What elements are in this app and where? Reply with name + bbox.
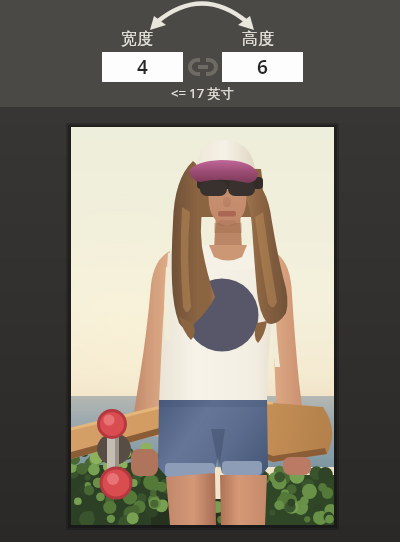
button[interactable]	[71, 127, 334, 525]
staticText: 宽度	[121, 29, 153, 49]
staticText: 6	[257, 54, 268, 80]
button[interactable]: 6	[222, 52, 303, 82]
button[interactable]: 4	[102, 52, 183, 82]
staticText: <= 17 英寸	[171, 84, 234, 102]
staticText: 4	[137, 54, 148, 80]
staticText: 高度	[242, 29, 274, 49]
button[interactable]	[186, 56, 220, 78]
